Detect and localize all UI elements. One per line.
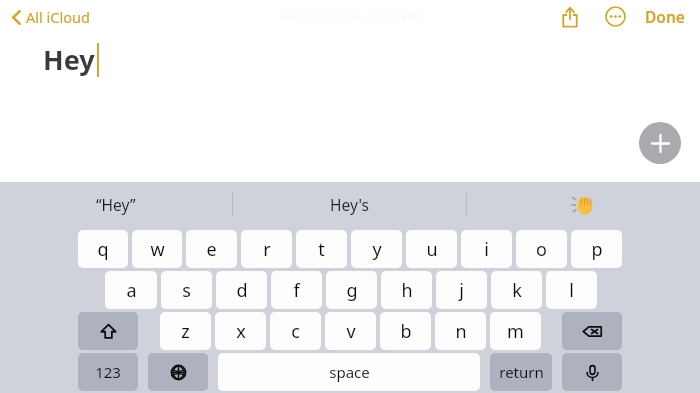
staticText: v [346,319,356,344]
button[interactable]: g [326,271,377,309]
button[interactable]: Waving hand emoji [467,182,700,227]
button[interactable]: space [218,353,480,391]
button[interactable]: n [435,312,486,350]
button[interactable]: “Hey” [0,182,232,227]
button[interactable]: Hey's [233,182,466,227]
button[interactable]: o [516,230,567,268]
button[interactable]: l [546,271,597,309]
staticText: l [569,278,574,303]
button[interactable]: Share [553,0,586,33]
staticText: o [536,237,547,262]
staticText: w [150,237,165,262]
button[interactable]: q [78,230,128,268]
staticText: z [181,319,190,344]
button[interactable]: e [186,230,237,268]
staticText: k [512,278,522,303]
button[interactable]: Done [641,1,689,32]
staticText: n [455,319,467,344]
button[interactable]: 123 [78,353,138,391]
button[interactable]: m [490,312,541,350]
staticText: All iCloud [26,7,90,27]
staticText: p [591,237,603,262]
staticText: r [263,237,271,262]
staticText: y [372,237,382,262]
staticText: m [507,319,524,344]
button[interactable]: All iCloud [9,2,93,32]
staticText: return [499,362,544,382]
button[interactable]: Switch keyboard [148,353,208,391]
staticText: q [97,237,109,262]
button[interactable]: p [571,230,622,268]
staticText: “Hey” [96,194,136,215]
staticText: g [346,278,358,303]
button[interactable]: Backspace [562,312,622,350]
staticText: x [236,319,246,344]
button[interactable]: return [490,353,552,391]
button[interactable]: i [461,230,512,268]
button[interactable]: t [296,230,347,268]
staticText: space [329,362,370,382]
button[interactable]: h [381,271,432,309]
staticText: s [182,278,191,303]
staticText: t [318,237,325,262]
button[interactable]: j [436,271,487,309]
button[interactable]: d [216,271,267,309]
staticText: Hey's [330,194,369,215]
staticText: 123 [95,362,121,382]
staticText: Hey [43,41,95,78]
button[interactable]: c [270,312,321,350]
staticText: c [291,319,300,344]
staticText: u [426,237,438,262]
button[interactable]: y [351,230,402,268]
button[interactable]: Shift [78,312,138,350]
button[interactable]: v [325,312,376,350]
button[interactable]: New note [639,122,681,164]
button[interactable]: r [241,230,292,268]
button[interactable]: Dictation [562,353,622,391]
button[interactable]: b [380,312,431,350]
button[interactable]: w [132,230,182,268]
staticText: a [126,278,137,303]
button[interactable]: s [161,271,212,309]
button[interactable]: z [160,312,211,350]
button[interactable]: a [105,271,157,309]
button[interactable]: More options [599,0,632,33]
staticText: i [484,237,489,262]
staticText: f [293,278,300,303]
staticText: d [236,278,248,303]
button[interactable]: x [215,312,266,350]
button[interactable]: k [491,271,542,309]
button[interactable]: u [406,230,457,268]
button[interactable]: f [271,271,322,309]
staticText: j [459,278,464,303]
staticText: b [400,319,412,344]
staticText: e [206,237,217,262]
staticText: Done [645,6,685,27]
other: Waving hand emoji [572,193,595,216]
staticText: h [401,278,413,303]
